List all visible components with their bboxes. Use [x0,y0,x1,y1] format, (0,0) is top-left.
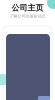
staticText: 公司主页 [11,3,43,13]
staticText: 了解公司的最新动态 [9,14,45,19]
